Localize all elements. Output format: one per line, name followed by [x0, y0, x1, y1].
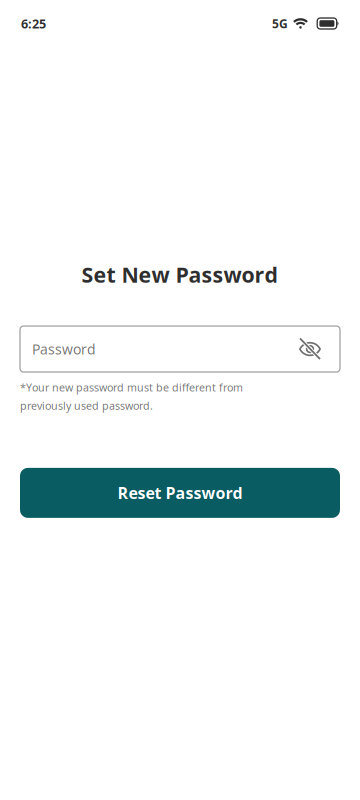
staticText: Password — [32, 339, 96, 359]
staticText: previously used password. — [20, 398, 153, 413]
button[interactable]: Reset Password — [20, 468, 340, 518]
staticText: 5G — [272, 15, 288, 32]
staticText: *Your new password must be different fro… — [20, 380, 243, 395]
button[interactable]: Password — [20, 326, 340, 372]
button[interactable]: Show password — [299, 338, 321, 360]
staticText: 6:25 — [21, 15, 46, 32]
staticText: Set New Password — [81, 260, 278, 289]
staticText: Reset Password — [117, 482, 242, 504]
